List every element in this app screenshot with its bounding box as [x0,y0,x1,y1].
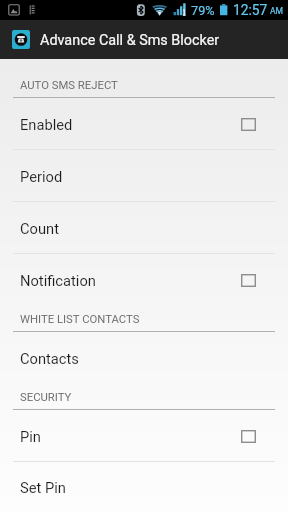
staticText: Enabled [20,116,73,133]
button[interactable]: Set Pin [0,462,288,512]
staticText: Pin [20,428,41,445]
button[interactable]: Count [0,202,288,254]
staticText: WHITE LIST CONTACTS [20,313,140,326]
staticText: 79% [191,3,215,18]
button[interactable]: Pin [0,410,288,462]
staticText: 12:57 [233,2,268,18]
button[interactable]: Notification [0,254,288,306]
button[interactable]: Contacts [0,332,288,384]
staticText: Contacts [20,350,79,367]
button[interactable]: App icon [12,30,30,49]
button[interactable]: Enabled [0,98,288,150]
staticText: SECURITY [20,391,72,404]
staticText: AM [270,6,284,16]
staticText: Count [20,220,59,237]
staticText: Set Pin [20,479,66,496]
button[interactable]: Period [0,150,288,202]
staticText: Advance Call & Sms Blocker [40,32,220,49]
staticText: Period [20,168,63,185]
staticText: AUTO SMS REJECT [20,79,118,92]
staticText: Notification [20,272,96,289]
